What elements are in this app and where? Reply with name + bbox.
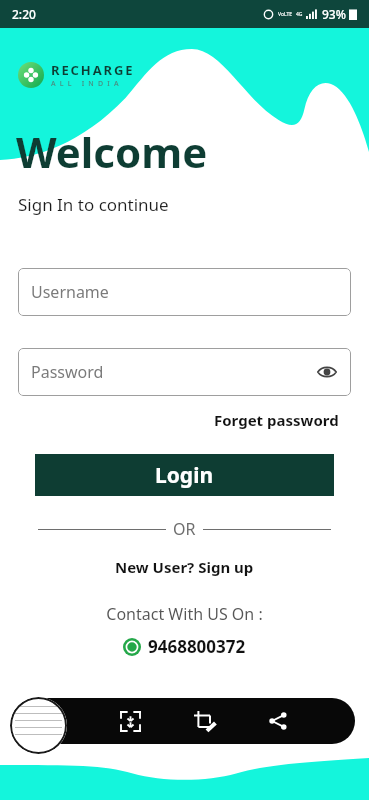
staticText: Login [155, 461, 214, 490]
staticText: Contact With US On : [0, 603, 369, 625]
button[interactable]: New User? Sign up [115, 557, 254, 577]
staticText: 2:20 [12, 6, 36, 22]
button[interactable]: Password [18, 348, 351, 396]
staticText: VoLTE [278, 11, 293, 18]
staticText: Username [31, 281, 109, 303]
button[interactable]: Show password [316, 361, 338, 383]
button[interactable]: Login [35, 454, 334, 496]
staticText: 93% [322, 6, 346, 22]
button[interactable]: Edit [189, 706, 219, 736]
staticText: 4G [296, 11, 303, 18]
staticText: New User? Sign up [115, 557, 254, 577]
staticText: ALL INDIA [51, 79, 123, 89]
staticText: Forget password [214, 410, 339, 430]
staticText: OR [173, 518, 196, 540]
button[interactable]: 9468800372 [0, 635, 369, 658]
staticText: Password [31, 361, 104, 383]
staticText: RECHARGE [51, 61, 135, 79]
button[interactable]: Forget password [214, 410, 339, 430]
button[interactable]: Username [18, 268, 351, 316]
button[interactable]: Share [263, 706, 293, 736]
button[interactable]: Scroll capture [115, 706, 145, 736]
staticText: Sign In to continue [18, 193, 169, 216]
button[interactable]: Screenshot preview [10, 697, 67, 754]
staticText: 9468800372 [148, 635, 246, 658]
staticText: Welcome [16, 123, 208, 180]
